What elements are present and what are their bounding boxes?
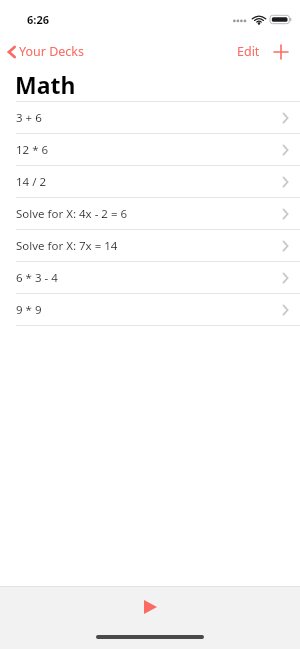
staticText: 9 * 9 bbox=[16, 302, 282, 318]
button[interactable]: 14 / 2 bbox=[0, 166, 300, 197]
button[interactable]: 12 * 6 bbox=[0, 134, 300, 165]
button[interactable]: 6 * 3 - 4 bbox=[0, 262, 300, 293]
staticText: 6:26 bbox=[27, 12, 49, 27]
staticText: 3 + 6 bbox=[16, 110, 282, 126]
staticText: Solve for X: 7x = 14 bbox=[16, 238, 282, 254]
staticText: 12 * 6 bbox=[16, 142, 282, 158]
staticText: Edit bbox=[237, 43, 260, 60]
staticText: 6 * 3 - 4 bbox=[16, 270, 282, 286]
staticText: Math bbox=[15, 69, 76, 100]
staticText: 14 / 2 bbox=[16, 174, 282, 190]
staticText: Your Decks bbox=[19, 43, 84, 60]
button[interactable]: Solve for X: 4x - 2 = 6 bbox=[0, 198, 300, 229]
button[interactable]: Add card bbox=[266, 40, 296, 64]
button[interactable]: 9 * 9 bbox=[0, 294, 300, 325]
button[interactable]: Play bbox=[138, 594, 163, 620]
button[interactable]: Solve for X: 7x = 14 bbox=[0, 230, 300, 261]
staticText: Solve for X: 4x - 2 = 6 bbox=[16, 206, 282, 222]
button[interactable]: 3 + 6 bbox=[0, 102, 300, 133]
button[interactable]: Edit bbox=[231, 38, 266, 65]
button[interactable]: Your Decks bbox=[0, 39, 92, 64]
